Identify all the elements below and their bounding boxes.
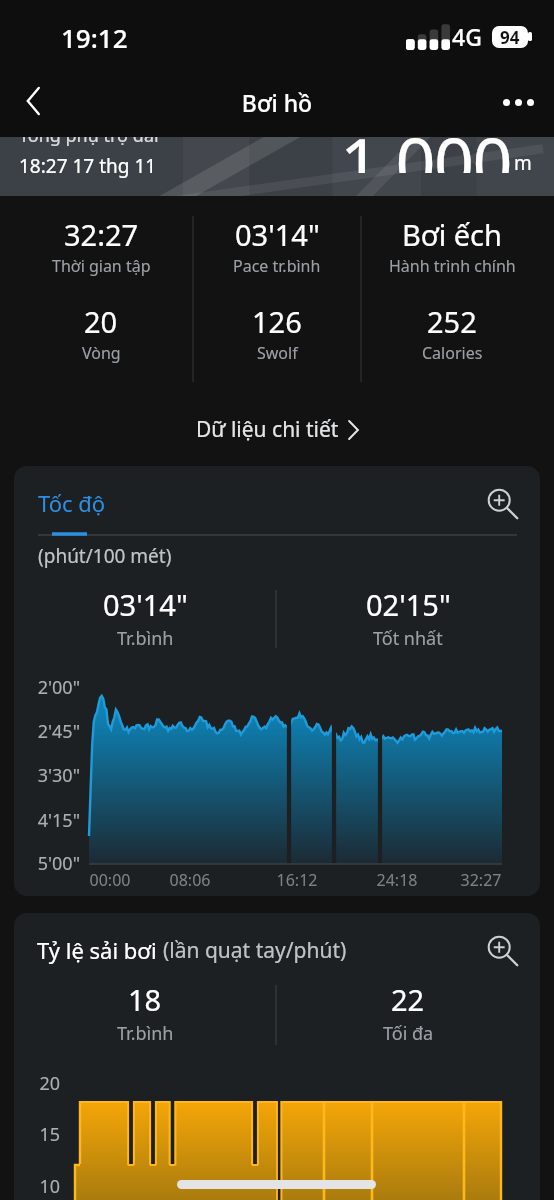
staticText: Tỷ lệ sải bơi (37, 935, 163, 965)
staticText: 94 (500, 26, 520, 48)
staticText: 02'15" (366, 585, 451, 624)
staticText: 24:18 (361, 869, 433, 891)
staticText: Bơi ếch (402, 215, 502, 254)
staticText: 1,000 (340, 137, 511, 173)
staticText: Dữ liệu chi tiết (196, 415, 339, 444)
staticText: m (514, 150, 532, 176)
staticText: 32:27 (64, 215, 139, 254)
staticText: Thời gian tập (52, 255, 151, 277)
button[interactable]: Expand chart (479, 480, 523, 524)
staticText: 20 (14, 1071, 60, 1096)
staticText: 5'00" (19, 851, 80, 876)
staticText: 03'14" (103, 585, 188, 624)
staticText: Tốc độ (38, 488, 106, 518)
staticText: 10 (14, 1174, 60, 1199)
staticText: Tr.bình (117, 626, 174, 651)
staticText: Tổng phụ trợ dài (19, 137, 159, 148)
staticText: 126 (252, 302, 302, 341)
staticText: 18:27 17 thg 11 (19, 153, 157, 179)
staticText: 4'15" (19, 808, 80, 833)
staticText: 18 (128, 980, 162, 1019)
staticText: Calories (422, 342, 483, 364)
staticText: Tr.bình (117, 1021, 174, 1046)
staticText: Tốt nhất (373, 626, 443, 651)
button[interactable]: Back (8, 76, 58, 126)
staticText: (lần quạt tay/phút) (163, 936, 347, 965)
button[interactable]: More options (493, 77, 543, 127)
staticText: 19:12 (61, 20, 128, 55)
staticText: 2'00" (19, 675, 80, 700)
staticText: Hành trình chính (389, 255, 516, 277)
staticText: Pace tr.bình (233, 255, 321, 277)
staticText: 252 (427, 302, 477, 341)
staticText: Swolf (257, 342, 298, 364)
staticText: 08:06 (154, 869, 226, 891)
staticText: 15 (14, 1122, 60, 1147)
staticText: 32:27 (445, 869, 517, 891)
staticText: 4G (452, 21, 482, 52)
staticText: Bơi hồ (0, 87, 554, 118)
staticText: 20 (84, 302, 118, 341)
staticText: (phút/100 mét) (38, 543, 172, 569)
staticText: 3'30" (19, 763, 80, 788)
staticText: Vòng (82, 342, 121, 364)
staticText: Tối đa (383, 1021, 434, 1046)
staticText: 00:00 (74, 869, 146, 891)
staticText: 22 (391, 980, 425, 1019)
staticText: 16:12 (261, 869, 333, 891)
staticText: 03'14" (235, 215, 320, 254)
button[interactable]: Expand chart (479, 927, 523, 971)
button[interactable]: Dữ liệu chi tiết (180, 406, 375, 452)
staticText: 2'45" (19, 719, 80, 744)
